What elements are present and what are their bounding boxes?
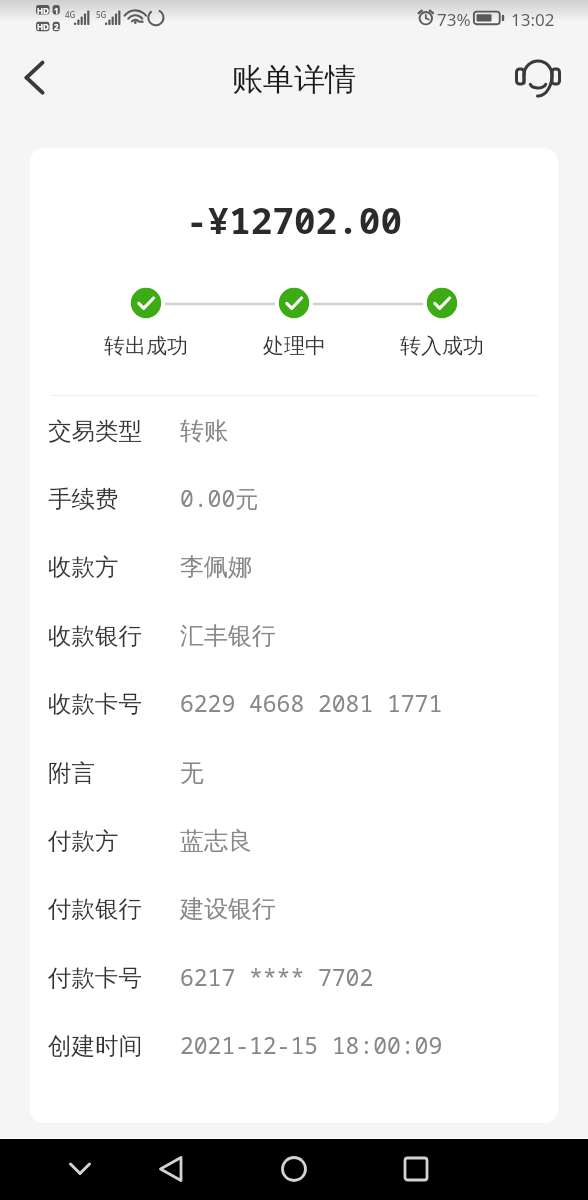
button[interactable]: Back [0,45,64,123]
staticText: 付款卡号 [48,963,142,993]
button[interactable]: Home [262,1139,326,1200]
staticText: 转入成功 [400,333,484,359]
staticText: -¥12702.00 [186,196,403,245]
staticText: HD [37,5,49,16]
staticText: 0.00元 [180,482,259,513]
staticText: 交易类型 [48,416,142,446]
staticText: 13:02 [511,8,555,31]
staticText: 73% [437,8,471,31]
staticText: 付款方 [48,826,119,856]
staticText: 6217 **** 7702 [180,961,374,992]
staticText: 2 [54,21,59,32]
staticText: 5G [96,9,107,20]
staticText: 创建时间 [48,1031,142,1061]
button[interactable]: Recents [384,1139,448,1200]
staticText: 付款银行 [48,894,142,924]
button[interactable]: Hide keyboard [48,1139,112,1200]
staticText: 4G [65,9,76,20]
staticText: 附言 [48,758,95,788]
staticText: 2021-12-15 18:00:09 [180,1029,443,1060]
staticText: 无 [180,758,204,788]
button[interactable]: Back [139,1139,203,1200]
staticText: 收款卡号 [48,689,142,719]
staticText: 6229 4668 2081 1771 [180,687,443,718]
staticText: 收款银行 [48,621,142,651]
staticText: 蓝志良 [180,826,252,856]
button[interactable]: Customer service [506,52,570,116]
staticText: 处理中 [263,333,326,359]
staticText: HD [37,21,49,32]
staticText: 1 [54,5,59,16]
staticText: 转账 [180,416,228,446]
staticText: 汇丰银行 [180,621,276,651]
staticText: 收款方 [48,552,119,582]
staticText: 账单详情 [232,60,356,99]
staticText: 建设银行 [180,894,276,924]
staticText: 转出成功 [104,333,188,359]
staticText: 手续费 [48,484,119,514]
staticText: 李佩娜 [180,552,252,582]
